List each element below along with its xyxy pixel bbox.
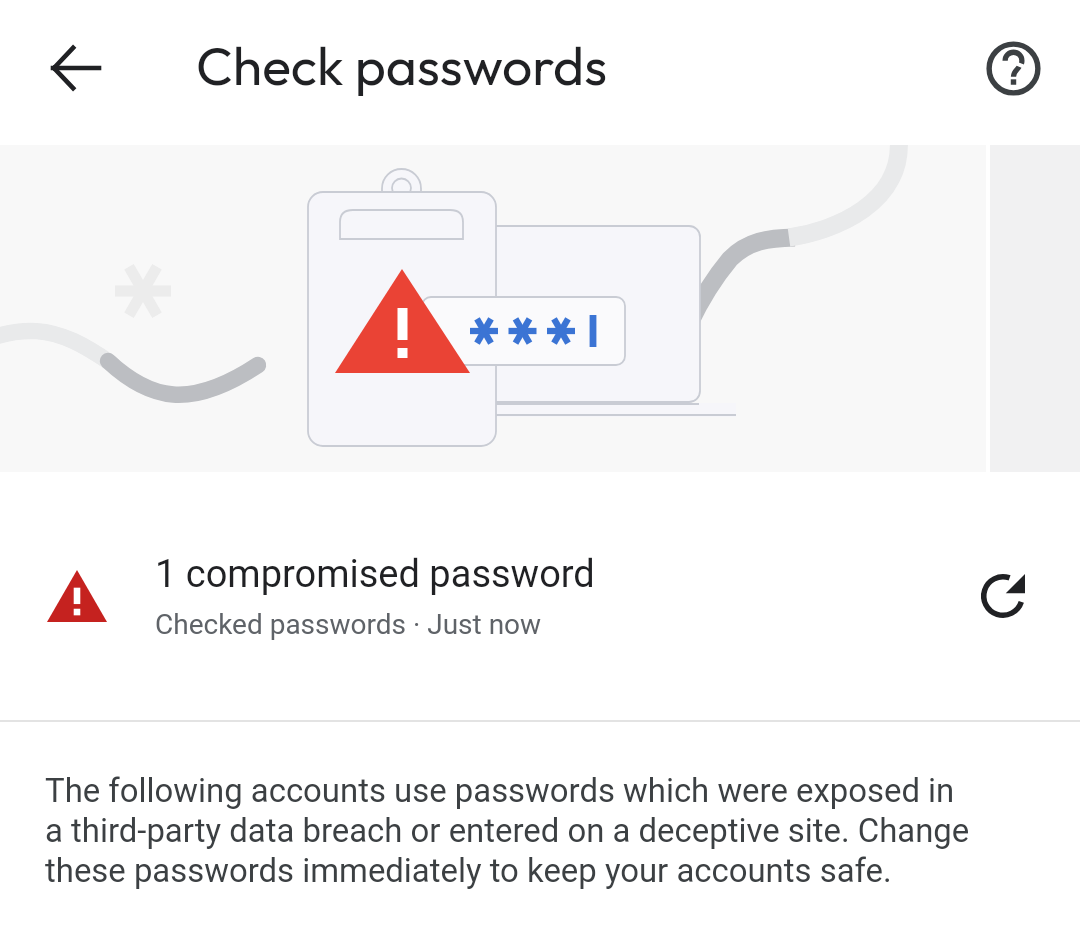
button[interactable]: Help (965, 20, 1061, 116)
button[interactable]: 1 compromised password (0, 472, 1080, 720)
staticText: Check passwords (196, 31, 607, 98)
button[interactable]: Back (28, 20, 124, 116)
staticText: 1 compromised password (155, 552, 595, 597)
staticText: Checked passwords · Just now (155, 608, 542, 641)
staticText: The following accounts use passwords whi… (45, 771, 975, 890)
button[interactable]: Refresh (955, 548, 1051, 644)
